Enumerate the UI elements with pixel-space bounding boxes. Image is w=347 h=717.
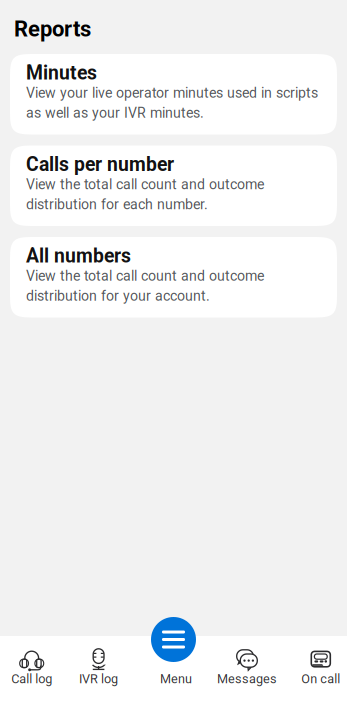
staticText: View the total call count and outcome <box>26 176 264 193</box>
staticText: distribution for your account. <box>26 288 210 304</box>
staticText: View the total call count and outcome <box>26 268 264 284</box>
staticText: Messages <box>217 672 277 686</box>
staticText: Calls per number <box>26 153 174 176</box>
staticText: Call log <box>11 672 52 686</box>
staticText: IVR log <box>79 672 118 686</box>
staticText: Reports <box>14 16 91 42</box>
button[interactable]: Minutes <box>10 54 337 134</box>
staticText: Menu <box>160 672 192 686</box>
button[interactable]: Calls per number <box>10 145 337 226</box>
button[interactable]: Menu <box>139 636 208 686</box>
button[interactable]: On call <box>278 636 347 686</box>
button[interactable]: Menu <box>151 617 196 662</box>
button[interactable]: Messages <box>208 636 278 686</box>
staticText: All numbers <box>26 245 131 267</box>
button[interactable]: IVR log <box>69 636 139 686</box>
staticText: Minutes <box>26 62 97 84</box>
staticText: View your live operator minutes used in … <box>26 85 318 101</box>
staticText: distribution for each number. <box>26 196 208 213</box>
staticText: as well as your IVR minutes. <box>26 105 204 121</box>
button[interactable]: All numbers <box>10 237 337 317</box>
staticText: On call <box>301 672 340 686</box>
button[interactable]: Call log <box>0 636 69 686</box>
